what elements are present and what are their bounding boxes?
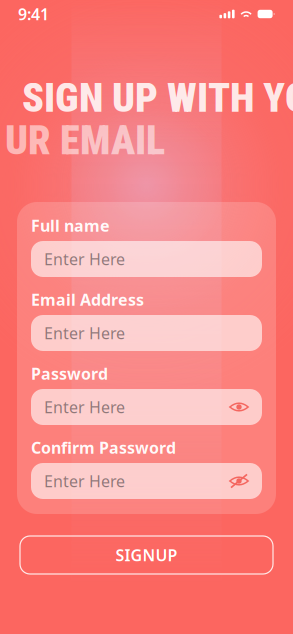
staticText: 9:41 — [18, 3, 49, 25]
staticText: SIGN UP WITH YO — [22, 75, 293, 121]
staticText: Email Address — [31, 289, 144, 310]
button[interactable]: Enter Here — [31, 315, 262, 351]
staticText: Enter Here — [44, 248, 125, 270]
staticText: SIGNUP — [115, 544, 177, 566]
staticText: Enter Here — [44, 322, 125, 344]
staticText: Password — [31, 363, 108, 384]
button[interactable]: Enter Here — [31, 389, 262, 425]
staticText: Confirm Password — [31, 437, 176, 458]
staticText: UR EMAIL — [5, 117, 165, 164]
button[interactable]: Enter Here — [31, 463, 262, 499]
staticText: Enter Here — [44, 470, 125, 492]
staticText: Full name — [31, 215, 110, 236]
button[interactable]: SIGNUP — [20, 536, 273, 574]
staticText: Enter Here — [44, 396, 125, 418]
button[interactable]: Enter Here — [31, 241, 262, 277]
